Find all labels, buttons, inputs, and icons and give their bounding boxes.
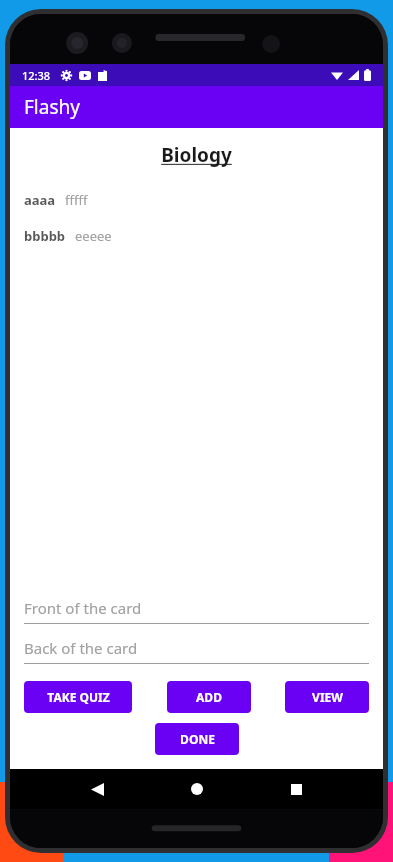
button[interactable]: Back of the card (24, 638, 369, 664)
staticText: 12:38 (22, 68, 51, 83)
staticText: VIEW (312, 689, 343, 705)
staticText: TAKE QUIZ (47, 689, 110, 705)
button[interactable]: ADD (167, 681, 251, 713)
button[interactable]: Recent apps (279, 772, 313, 806)
button[interactable]: bbbbb (10, 225, 383, 247)
staticText: bbbbb (24, 227, 66, 245)
staticText: DONE (180, 731, 215, 747)
staticText: fffff (65, 191, 88, 209)
staticText: Flashy (24, 94, 80, 120)
staticText: Back of the card (24, 638, 138, 658)
staticText: aaaa (24, 191, 56, 209)
button[interactable]: DONE (155, 723, 239, 755)
staticText: Front of the card (24, 598, 142, 618)
staticText: ADD (196, 689, 222, 705)
button[interactable]: TAKE QUIZ (24, 681, 132, 713)
button[interactable]: Front of the card (24, 598, 369, 624)
button[interactable]: VIEW (285, 681, 369, 713)
staticText: Biology (161, 142, 232, 168)
button[interactable]: Home (180, 772, 214, 806)
staticText: eeeee (75, 227, 112, 245)
button[interactable]: aaaa (10, 189, 383, 211)
button[interactable]: Back (80, 772, 114, 806)
